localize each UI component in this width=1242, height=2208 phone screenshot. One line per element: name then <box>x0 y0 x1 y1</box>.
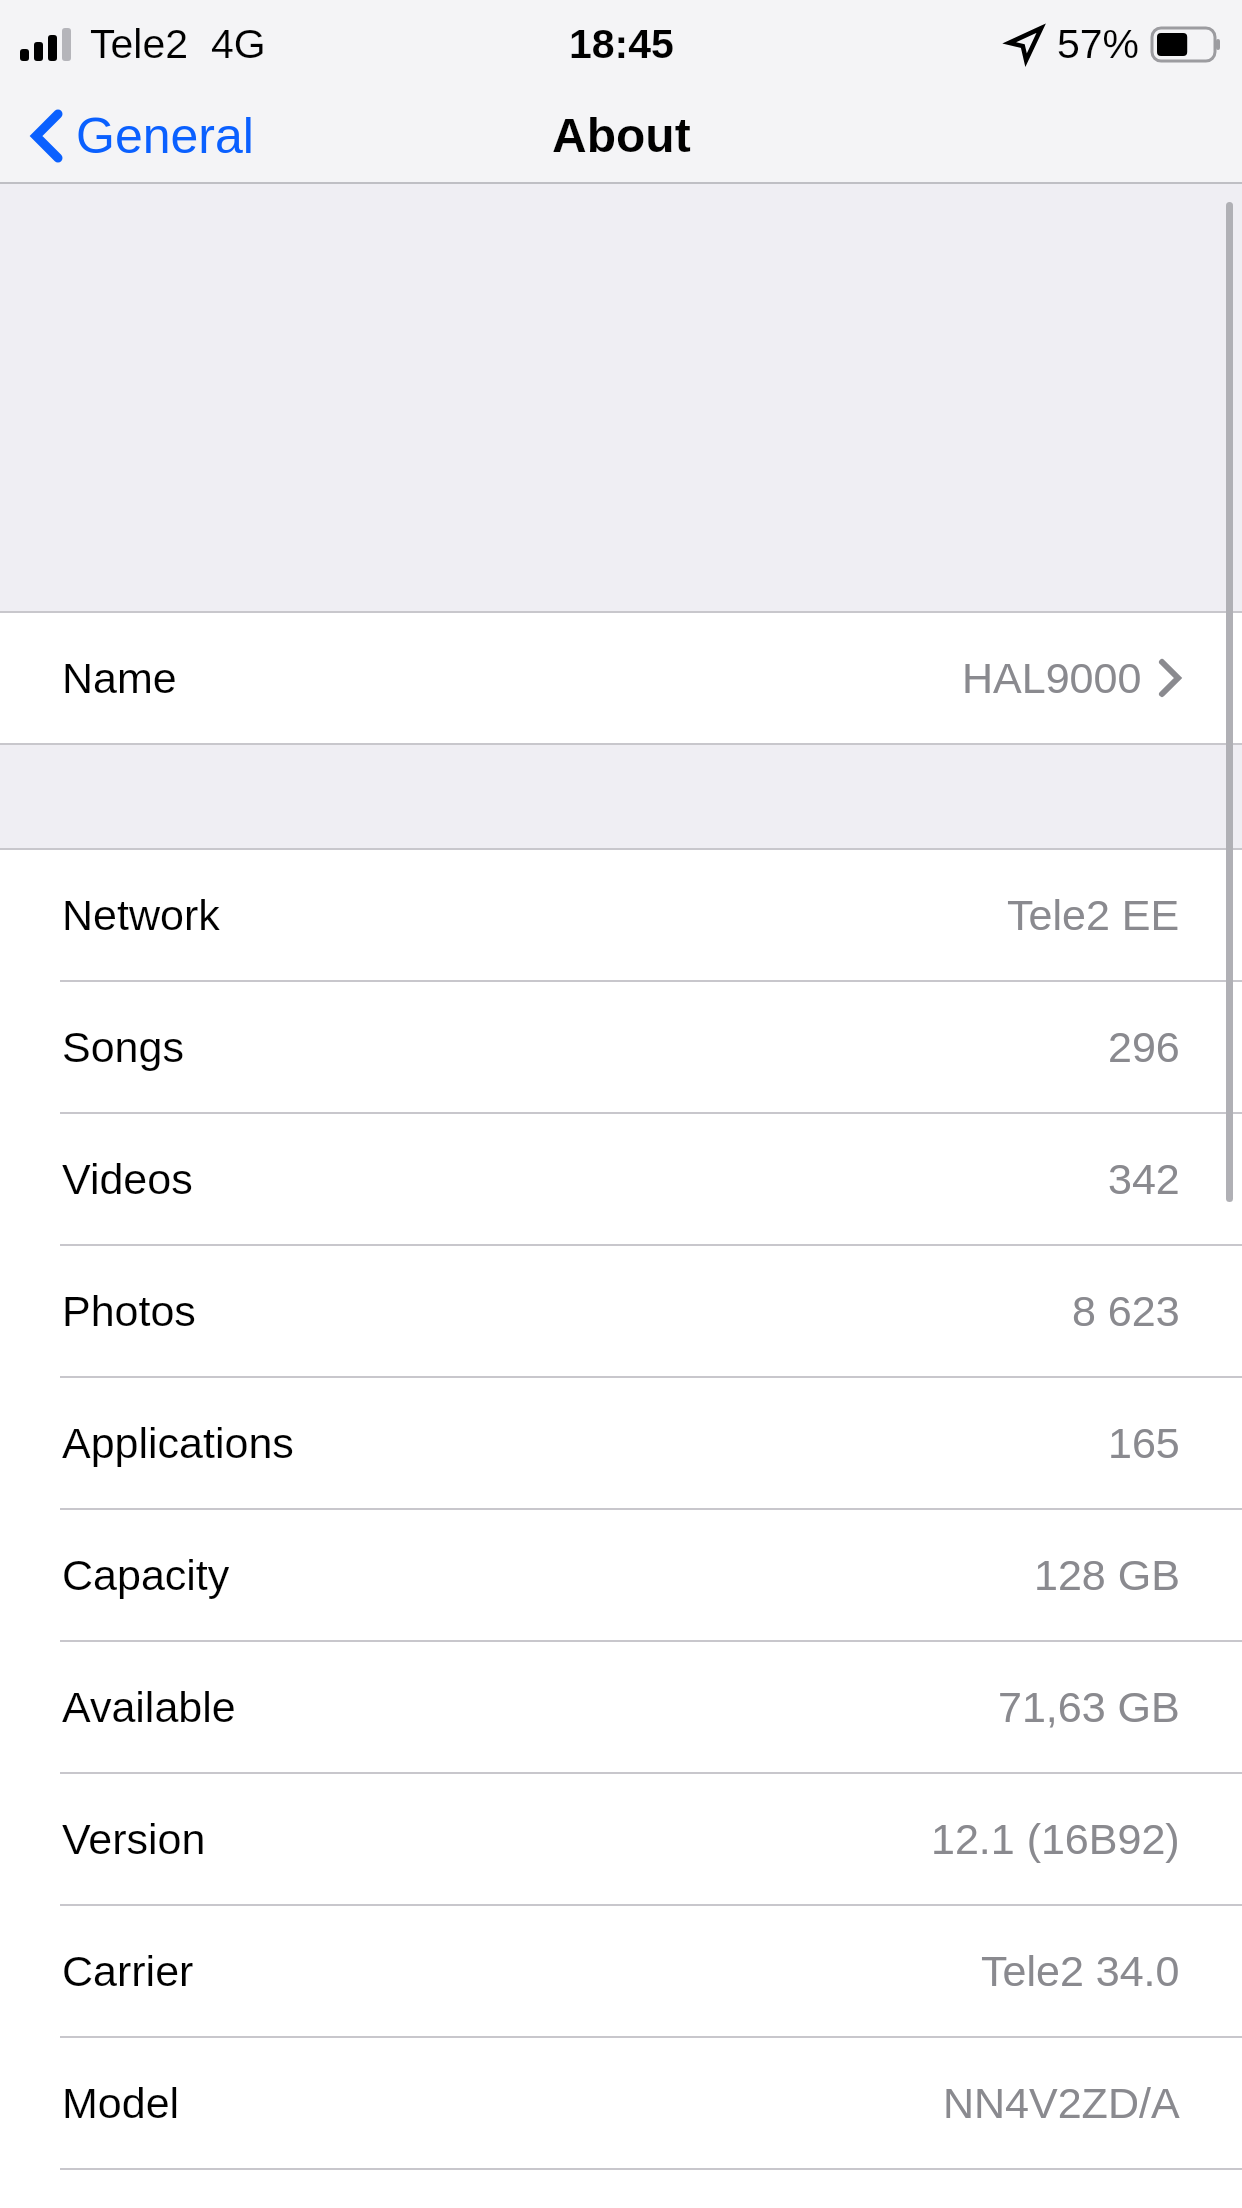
staticText: Videos <box>62 1155 193 1203</box>
staticText: 4G <box>211 21 266 67</box>
staticText: 342 <box>1108 1155 1180 1203</box>
staticText: Tele2 34.0 <box>981 1947 1180 1995</box>
button[interactable]: Videos <box>0 1114 1242 1244</box>
button[interactable]: Songs <box>0 982 1242 1112</box>
staticText: Capacity <box>62 1551 230 1599</box>
staticText: Name <box>62 654 177 702</box>
staticText: Version <box>62 1815 206 1863</box>
staticText: 12.1 (16B92) <box>931 1815 1180 1863</box>
staticText: About <box>552 109 691 163</box>
staticText: 71,63 GB <box>998 1683 1180 1731</box>
button[interactable]: Name <box>0 613 1242 743</box>
staticText: Tele2 EE <box>1007 891 1180 939</box>
button[interactable]: Version <box>0 1774 1242 1904</box>
button[interactable]: General <box>0 108 274 164</box>
button[interactable]: Available <box>0 1642 1242 1772</box>
staticText: Photos <box>62 1287 196 1335</box>
staticText: 8 623 <box>1072 1287 1180 1335</box>
button[interactable]: Capacity <box>0 1510 1242 1640</box>
staticText: Carrier <box>62 1947 194 1995</box>
staticText: 128 GB <box>1034 1551 1180 1599</box>
staticText: NN4V2ZD/A <box>943 2079 1180 2127</box>
staticText: Available <box>62 1683 236 1731</box>
staticText: Applications <box>62 1419 294 1467</box>
staticText: 165 <box>1108 1419 1180 1467</box>
button[interactable]: Network <box>0 850 1242 980</box>
button[interactable]: Applications <box>0 1378 1242 1508</box>
staticText: Tele2 <box>90 21 189 67</box>
button[interactable]: Model <box>0 2038 1242 2168</box>
staticText: 18:45 <box>569 21 674 67</box>
staticText: Network <box>62 891 220 939</box>
button[interactable]: Photos <box>0 1246 1242 1376</box>
staticText: HAL9000 <box>962 654 1142 702</box>
staticText: Songs <box>62 1023 184 1071</box>
button[interactable]: Carrier <box>0 1906 1242 2036</box>
staticText: 57% <box>1057 21 1140 67</box>
staticText: 296 <box>1108 1023 1180 1071</box>
staticText: General <box>76 108 254 164</box>
staticText: Model <box>62 2079 180 2127</box>
